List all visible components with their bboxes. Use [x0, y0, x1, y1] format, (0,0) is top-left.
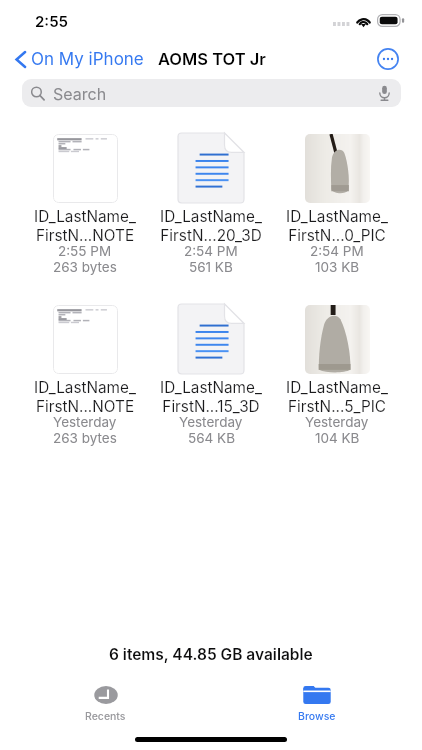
staticText: ID_LastName_ FirstN...5_PIC	[286, 378, 388, 416]
staticText: 2:54 PM	[310, 243, 364, 259]
button[interactable]: Browse	[211, 668, 422, 723]
button[interactable]: ID_LastName_ FirstN...20_3D	[148, 133, 274, 277]
staticText: AOMS TOT Jr	[158, 49, 266, 69]
staticText: 564 KB	[188, 430, 235, 446]
staticText: 263 bytes	[53, 430, 117, 446]
staticText: Yesterday	[53, 414, 117, 430]
button[interactable]: ID_LastName_ FirstN...15_3D	[148, 304, 274, 448]
staticText: 2:55 PM	[58, 243, 112, 259]
button[interactable]: Search	[22, 79, 401, 107]
staticText: On My iPhone	[31, 49, 144, 70]
staticText: 2:55	[35, 12, 68, 30]
button[interactable]: On My iPhone	[15, 49, 144, 70]
button[interactable]: Recents	[0, 668, 211, 723]
staticText: Browse	[298, 710, 336, 723]
staticText: ID_LastName_ FirstN...NOTE	[34, 378, 136, 416]
staticText: 2:54 PM	[184, 243, 238, 259]
staticText: Recents	[85, 710, 126, 723]
staticText: ID_LastName_ FirstN...NOTE	[34, 207, 136, 245]
staticText: 6 items, 44.85 GB available	[109, 645, 313, 664]
staticText: 104 KB	[315, 430, 360, 446]
button[interactable]: ID_LastName_ FirstN...NOTE	[22, 304, 148, 448]
staticText: 103 KB	[315, 259, 360, 275]
staticText: ID_LastName_ FirstN...0_PIC	[286, 207, 388, 245]
staticText: Yesterday	[305, 414, 369, 430]
button[interactable]: ID_LastName_ FirstN...NOTE	[22, 133, 148, 277]
staticText: Search	[53, 84, 107, 103]
button[interactable]: ID_LastName_ FirstN...0_PIC	[274, 133, 400, 277]
staticText: ID_LastName_ FirstN...20_3D	[160, 207, 262, 245]
button[interactable]: ID_LastName_ FirstN...5_PIC	[274, 304, 400, 448]
staticText: Yesterday	[179, 414, 243, 430]
staticText: 263 bytes	[53, 259, 117, 275]
staticText: 561 KB	[189, 259, 233, 275]
button[interactable]: More options	[373, 44, 403, 74]
staticText: ID_LastName_ FirstN...15_3D	[160, 378, 262, 416]
